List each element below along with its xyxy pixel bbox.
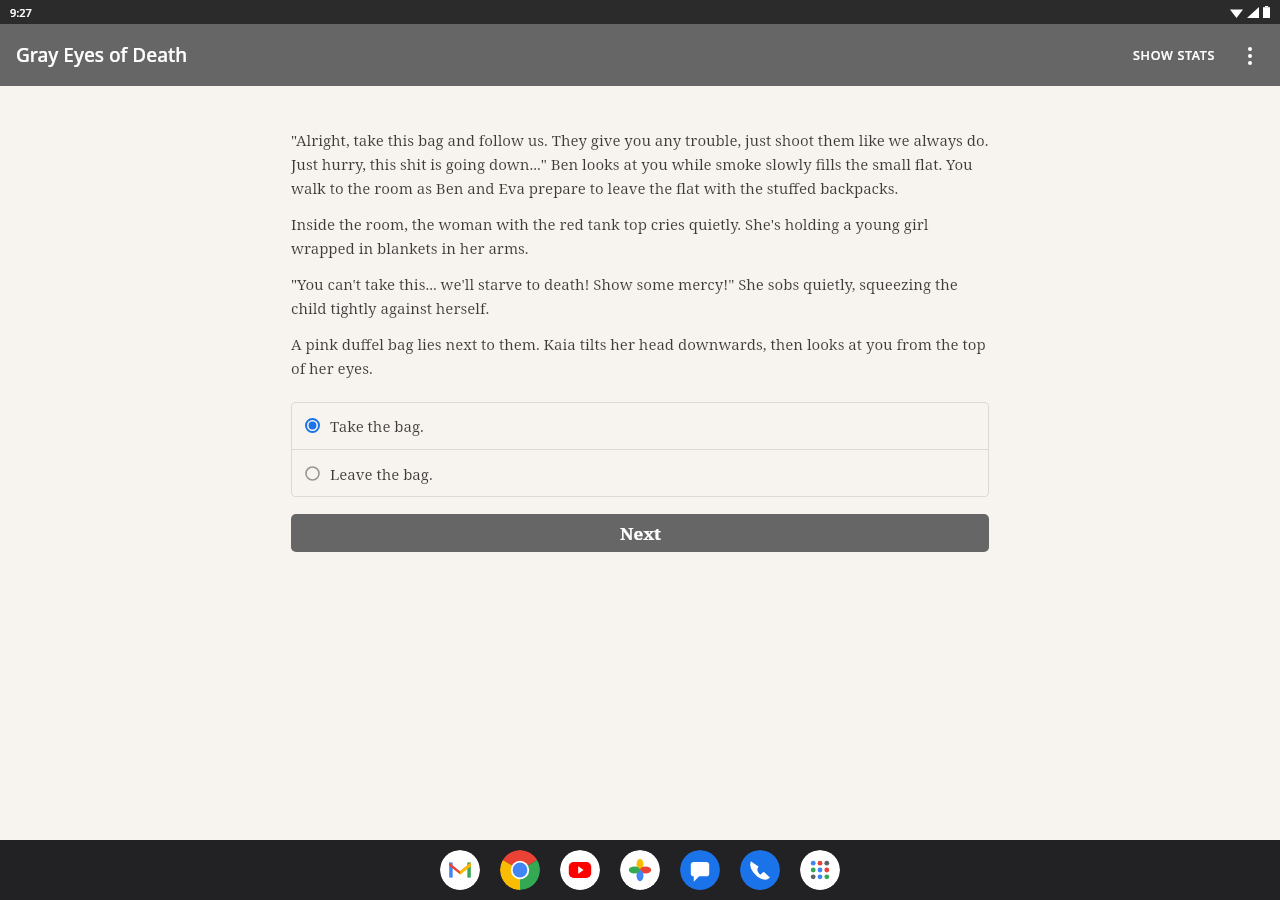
staticText: Gray Eyes of Death: [16, 42, 188, 68]
button[interactable]: Gmail: [440, 850, 480, 890]
staticText: 9:27: [10, 5, 32, 20]
button[interactable]: Chrome: [500, 850, 540, 890]
button[interactable]: Next: [291, 514, 989, 552]
button[interactable]: Take the bag.: [291, 402, 989, 449]
button[interactable]: All apps: [800, 850, 840, 890]
button[interactable]: SHOW STATS: [1121, 33, 1228, 78]
staticText: Leave the bag.: [330, 464, 433, 484]
staticText: "Alright, take this bag and follow us. T…: [291, 130, 989, 198]
staticText: Next: [620, 522, 661, 545]
button[interactable]: Photos: [620, 850, 660, 890]
staticText: Inside the room, the woman with the red …: [291, 214, 989, 258]
staticText: "You can't take this... we'll starve to …: [291, 274, 989, 318]
button[interactable]: Messages: [680, 850, 720, 890]
button[interactable]: Phone: [740, 850, 780, 890]
button[interactable]: Leave the bag.: [291, 450, 989, 497]
staticText: A pink duffel bag lies next to them. Kai…: [291, 334, 989, 378]
staticText: SHOW STATS: [1133, 47, 1216, 64]
staticText: Take the bag.: [330, 416, 424, 436]
button[interactable]: More options: [1228, 34, 1272, 78]
button[interactable]: YouTube: [560, 850, 600, 890]
